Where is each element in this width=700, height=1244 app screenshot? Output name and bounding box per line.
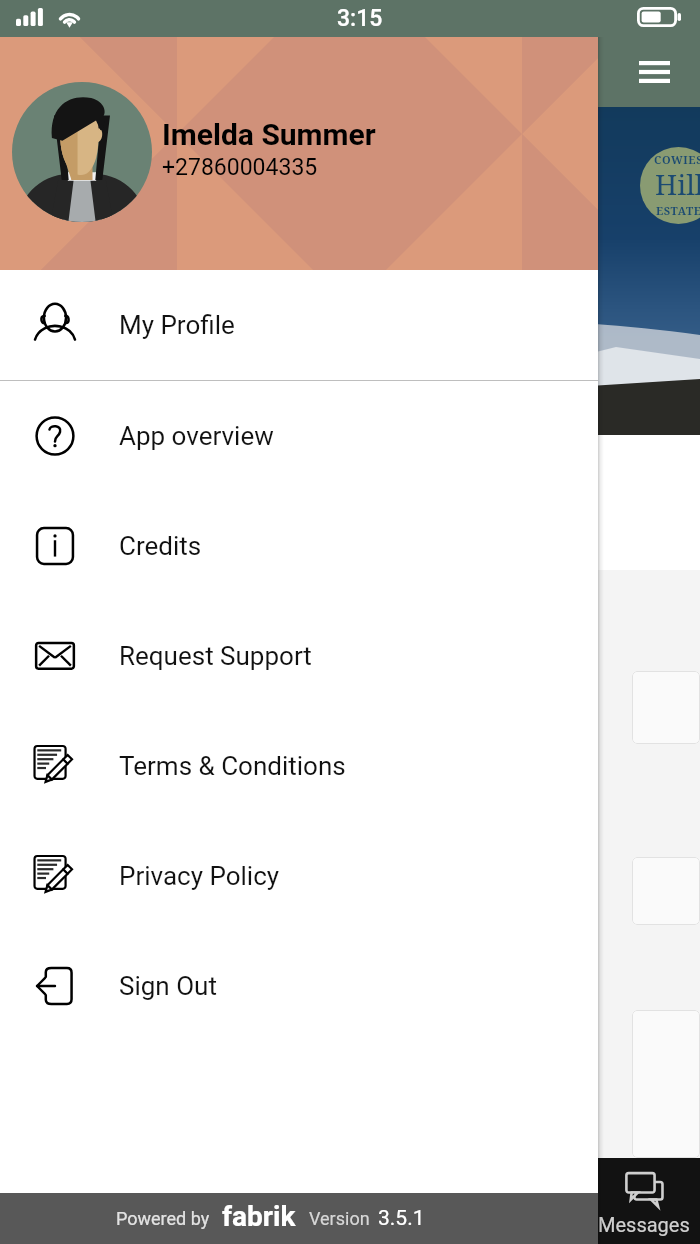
staticText: Credits [119,531,202,561]
staticText: Request Support [119,641,312,671]
staticText: fabrik [222,1200,296,1233]
staticText: Messages [598,1213,690,1236]
staticText: ESTATE [656,203,700,218]
button[interactable]: Request Support [0,601,598,711]
staticText: App overview [119,421,274,451]
staticText: Hill [655,165,700,203]
button[interactable]: My Profile [0,270,598,380]
staticText: Imelda Summer [162,117,376,152]
staticText: COWIES [654,152,700,167]
button[interactable]: Sign Out [0,931,598,1041]
staticText: Version [309,1208,370,1229]
staticText: Terms & Conditions [119,751,346,781]
button[interactable]: Credits [0,491,598,601]
staticText: 3:15 [337,5,383,32]
button[interactable] [632,671,700,744]
button[interactable]: App overview [0,381,598,491]
staticText: Privacy Policy [119,861,280,891]
staticText: 3.5.1 [378,1206,425,1231]
staticText: Sign Out [119,971,217,1001]
staticText: +27860004335 [162,154,318,181]
button[interactable] [632,857,700,925]
button[interactable]: Privacy Policy [0,821,598,931]
button[interactable]: Terms & Conditions [0,711,598,821]
button[interactable]: Open navigation menu [625,43,683,101]
staticText: Powered by [116,1208,210,1229]
staticText: My Profile [119,310,235,340]
button[interactable] [632,1010,700,1158]
button[interactable]: Messages [588,1158,700,1244]
